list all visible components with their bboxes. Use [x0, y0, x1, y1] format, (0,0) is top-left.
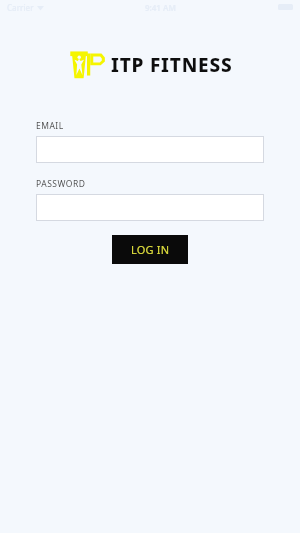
staticText: ITP FITNESS [111, 52, 233, 78]
staticText: LOG IN [131, 242, 170, 257]
staticText: EMAIL [36, 120, 64, 132]
staticText: PASSWORD [36, 178, 86, 190]
button[interactable]: Password input [36, 194, 264, 221]
staticText: 9:41 AM [145, 2, 176, 13]
button[interactable]: Email input [36, 136, 264, 163]
staticText: Carrier [7, 2, 34, 13]
button[interactable]: LOG IN [112, 235, 188, 264]
other: ITP Fitness logo [68, 50, 106, 79]
